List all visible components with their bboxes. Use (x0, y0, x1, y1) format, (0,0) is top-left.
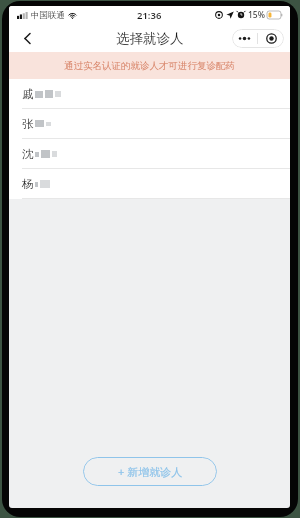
staticText: + 新增就诊人 (118, 464, 183, 479)
button[interactable]: 更多 (232, 29, 257, 48)
staticText: 选择就诊人 (116, 30, 184, 47)
staticText: 中国联通 (31, 10, 65, 21)
button[interactable]: 戚 (9, 79, 290, 108)
button[interactable]: + 新增就诊人 (83, 457, 217, 486)
button[interactable]: 返回 (14, 25, 40, 51)
staticText: 杨 (22, 177, 34, 191)
staticText: 15% (248, 9, 265, 21)
button[interactable]: 关闭 (258, 29, 284, 48)
button[interactable]: 沈 (9, 139, 290, 168)
staticText: 通过实名认证的就诊人才可进行复诊配药 (64, 60, 235, 72)
staticText: 戚 (22, 87, 34, 101)
staticText: 沈 (22, 147, 34, 161)
staticText: 张 (22, 117, 34, 131)
button[interactable]: 张 (9, 109, 290, 138)
staticText: 21:36 (137, 9, 162, 22)
button[interactable]: 杨 (9, 169, 290, 198)
